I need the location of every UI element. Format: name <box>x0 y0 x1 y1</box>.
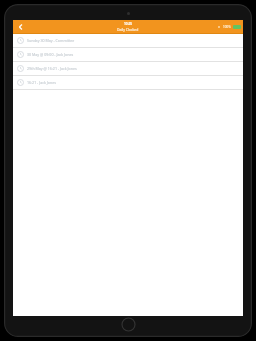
button[interactable]: Home <box>121 317 136 332</box>
button[interactable]: 10:25 <box>117 22 139 32</box>
staticText: 29th May @ 16:21 - Jack Jones <box>27 66 77 71</box>
button[interactable]: 29th May @ 16:21 - Jack Jones <box>13 62 243 75</box>
staticText: 10:25 <box>124 22 133 26</box>
staticText: Daily Clocked <box>117 27 139 32</box>
staticText: 16:21 - Jack Jones <box>27 80 56 85</box>
button[interactable]: Back <box>13 20 29 34</box>
button[interactable]: 30 May @ 09:00 - Jack Jones <box>13 48 243 61</box>
button[interactable]: 16:21 - Jack Jones <box>13 76 243 89</box>
staticText: Sunday 30 May - Committee <box>27 38 75 43</box>
staticText: 30 May @ 09:00 - Jack Jones <box>27 52 74 57</box>
staticText: 100% <box>223 25 231 29</box>
button[interactable]: Sunday 30 May - Committee <box>13 34 243 47</box>
